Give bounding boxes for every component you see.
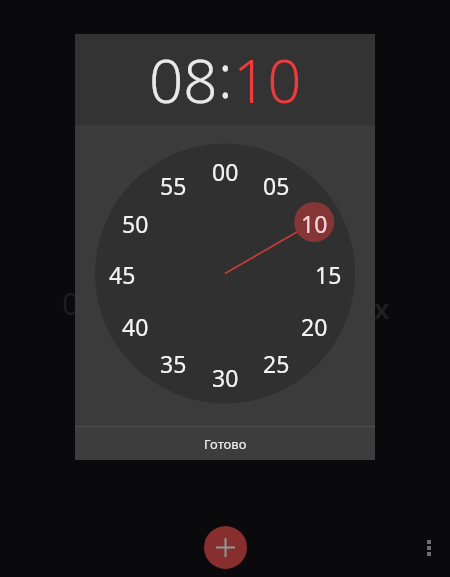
staticText: 20	[301, 311, 328, 339]
button[interactable]: Готово	[75, 427, 375, 460]
staticText: 50	[122, 208, 149, 236]
staticText: 15	[315, 259, 342, 287]
staticText: :	[218, 34, 233, 116]
staticText: x	[374, 290, 390, 327]
staticText: Готово	[204, 435, 247, 453]
staticText: 10	[233, 39, 302, 121]
button[interactable]	[204, 526, 247, 569]
staticText: 00	[212, 156, 239, 184]
staticText: 45	[109, 259, 136, 287]
button[interactable]	[421, 535, 437, 561]
staticText: 05	[263, 170, 290, 198]
staticText: 25	[263, 348, 290, 376]
staticText: 0	[62, 282, 80, 324]
staticText: 40	[122, 311, 149, 339]
staticText: 30	[212, 362, 239, 390]
staticText: 35	[160, 348, 187, 376]
staticText: 55	[160, 170, 187, 198]
staticText: 08	[149, 39, 218, 121]
staticText: 10	[301, 208, 328, 236]
